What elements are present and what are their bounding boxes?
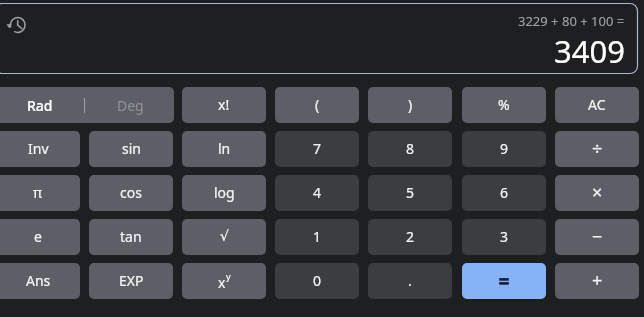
staticText: Deg: [117, 96, 144, 115]
staticText: 0: [313, 271, 322, 290]
staticText: −: [592, 224, 603, 249]
button[interactable]: ): [368, 87, 452, 123]
button[interactable]: 7: [275, 131, 359, 167]
staticText: π: [33, 183, 43, 202]
button[interactable]: 3: [462, 219, 546, 255]
staticText: ln: [218, 139, 231, 158]
staticText: y: [226, 270, 231, 282]
button[interactable]: −: [555, 219, 639, 255]
button[interactable]: +: [555, 263, 639, 299]
staticText: x: [218, 273, 226, 292]
staticText: 4: [313, 183, 322, 202]
staticText: ÷: [592, 136, 603, 161]
staticText: .: [408, 271, 412, 290]
staticText: tan: [120, 227, 142, 246]
staticText: sin: [122, 139, 141, 158]
button[interactable]: 4: [275, 175, 359, 211]
button[interactable]: Equals: [462, 263, 546, 299]
button[interactable]: x!: [182, 87, 266, 123]
staticText: 1: [313, 227, 322, 246]
staticText: e: [34, 227, 42, 246]
staticText: 3: [500, 227, 509, 246]
staticText: 5: [406, 183, 415, 202]
staticText: 9: [500, 139, 509, 158]
button[interactable]: tan: [89, 219, 173, 255]
button[interactable]: .: [368, 263, 452, 299]
staticText: %: [498, 95, 510, 114]
staticText: 3229 + 80 + 100 =: [518, 12, 625, 30]
staticText: 8: [406, 139, 415, 158]
button[interactable]: ln: [182, 131, 266, 167]
button[interactable]: AC: [555, 87, 639, 123]
staticText: 3409: [554, 30, 625, 72]
staticText: ×: [592, 180, 603, 205]
button[interactable]: (: [275, 87, 359, 123]
button[interactable]: %: [462, 87, 546, 123]
button[interactable]: 1: [275, 219, 359, 255]
staticText: EXP: [119, 271, 144, 290]
button[interactable]: x: [182, 263, 266, 299]
button[interactable]: History: [5, 13, 29, 37]
button[interactable]: 6: [462, 175, 546, 211]
button[interactable]: EXP: [89, 263, 173, 299]
staticText: (: [315, 95, 320, 114]
button[interactable]: ×: [555, 175, 639, 211]
staticText: log: [214, 183, 235, 202]
staticText: 6: [500, 183, 509, 202]
staticText: Ans: [26, 271, 51, 290]
button[interactable]: 5: [368, 175, 452, 211]
staticText: 2: [406, 227, 415, 246]
staticText: 7: [313, 139, 322, 158]
button[interactable]: cos: [89, 175, 173, 211]
button[interactable]: Inv: [0, 131, 80, 167]
button[interactable]: 0: [275, 263, 359, 299]
staticText: +: [592, 268, 603, 293]
staticText: cos: [120, 183, 142, 202]
button[interactable]: ÷: [555, 131, 639, 167]
button[interactable]: sin: [89, 131, 173, 167]
staticText: √: [220, 228, 229, 244]
staticText: x!: [218, 95, 230, 114]
button[interactable]: log: [182, 175, 266, 211]
button[interactable]: Ans: [0, 263, 80, 299]
button[interactable]: 9: [462, 131, 546, 167]
button[interactable]: 8: [368, 131, 452, 167]
staticText: AC: [588, 95, 606, 114]
button[interactable]: 2: [368, 219, 452, 255]
button[interactable]: √: [182, 219, 266, 255]
staticText: ): [408, 95, 413, 114]
staticText: Inv: [28, 139, 49, 158]
staticText: Rad: [27, 96, 53, 115]
button[interactable]: e: [0, 219, 80, 255]
button[interactable]: π: [0, 175, 80, 211]
button[interactable]: Rad: [0, 87, 174, 123]
